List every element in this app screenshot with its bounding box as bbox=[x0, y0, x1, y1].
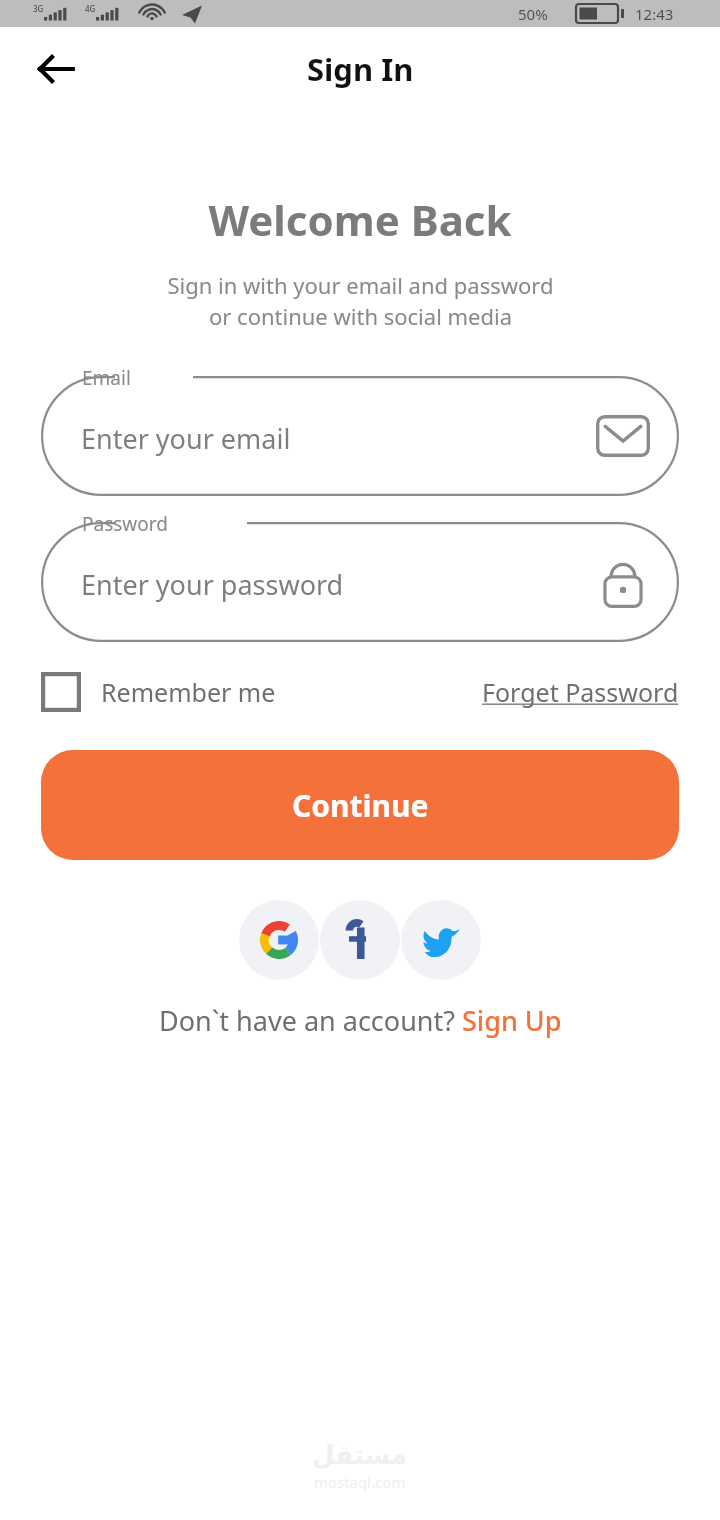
button[interactable]: Sign in with Google bbox=[239, 900, 319, 980]
button[interactable]: Password bbox=[41, 522, 679, 642]
staticText: Sign In bbox=[307, 48, 414, 90]
staticText: mostaql.com bbox=[314, 1472, 406, 1492]
button[interactable]: Remember me bbox=[41, 672, 276, 712]
staticText: Password bbox=[82, 511, 168, 537]
button[interactable]: Sign Up bbox=[462, 1002, 562, 1039]
staticText: Sign in with your email and password or … bbox=[167, 270, 554, 332]
staticText: Enter your password bbox=[81, 566, 344, 603]
staticText: مستقل bbox=[312, 1440, 408, 1470]
staticText: Don`t have an account? bbox=[159, 1002, 462, 1039]
staticText: Forget Password bbox=[482, 675, 679, 709]
button[interactable]: Continue bbox=[41, 750, 679, 860]
button[interactable]: Sign in with Facebook bbox=[320, 900, 400, 980]
staticText: Continue bbox=[292, 785, 429, 826]
staticText: Welcome Back bbox=[208, 191, 512, 248]
button[interactable]: Back bbox=[20, 33, 92, 105]
staticText: 4G bbox=[85, 3, 96, 14]
staticText: 3G bbox=[33, 3, 44, 14]
staticText: 50% bbox=[518, 4, 548, 24]
staticText: Enter your email bbox=[81, 420, 291, 457]
button[interactable]: Forget Password bbox=[482, 675, 679, 709]
staticText: Sign Up bbox=[462, 1002, 562, 1039]
staticText: 12:43 bbox=[635, 4, 674, 24]
staticText: Remember me bbox=[101, 675, 276, 709]
button[interactable]: Sign in with Twitter bbox=[401, 900, 481, 980]
button[interactable]: Email bbox=[41, 376, 679, 496]
staticText: Email bbox=[82, 365, 131, 391]
